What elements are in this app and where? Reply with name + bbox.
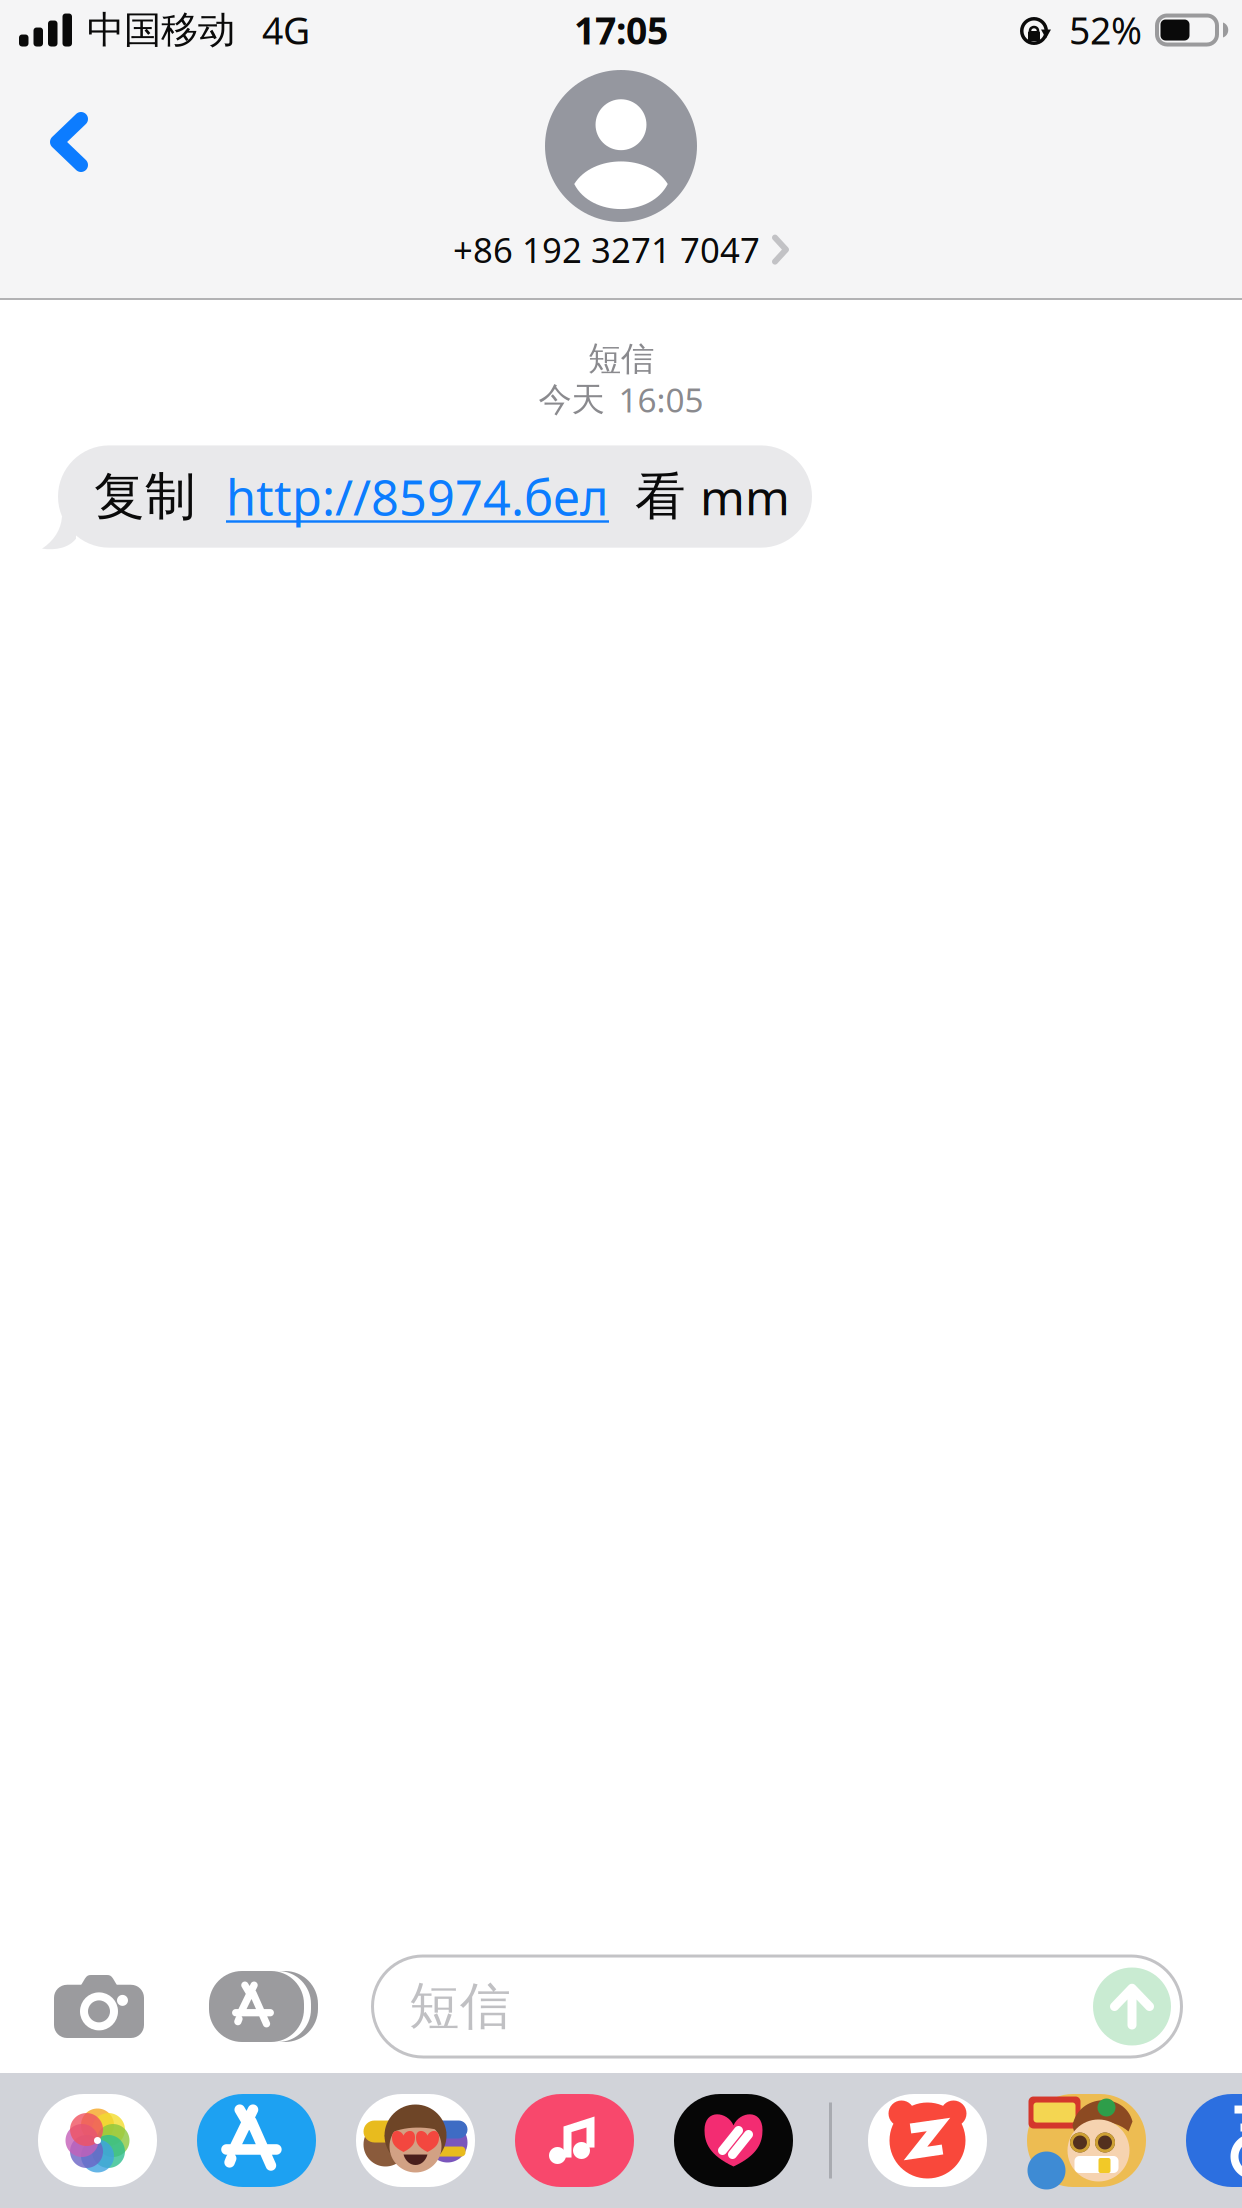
button[interactable]: Back	[0, 86, 118, 198]
staticText: 中国移动	[87, 6, 235, 53]
button[interactable]: App Store	[197, 2094, 316, 2187]
button[interactable]: Game	[1027, 2094, 1146, 2187]
staticText: 52%	[1069, 5, 1142, 55]
button[interactable]: Photos	[38, 2094, 157, 2187]
staticText: 今天	[538, 379, 604, 421]
button[interactable]: 短信	[371, 1954, 1183, 2058]
staticText: mm	[700, 464, 790, 529]
staticText: 短信	[588, 338, 654, 380]
staticText: 17:05	[574, 5, 668, 55]
button[interactable]: Send	[1093, 1967, 1183, 2045]
staticText: 4G	[262, 5, 310, 55]
staticText: 复制	[94, 465, 196, 528]
button[interactable]: App	[1186, 2094, 1242, 2187]
button[interactable]: Digital Touch	[674, 2094, 793, 2187]
staticText: http://85974.бел	[226, 463, 609, 530]
button[interactable]: Camera	[0, 1940, 209, 2073]
staticText: 短信	[409, 1975, 511, 2038]
button[interactable]: Zhihu	[868, 2094, 987, 2187]
button[interactable]: App Store	[209, 1940, 371, 2073]
button[interactable]: +86 192 3271 7047	[445, 222, 797, 277]
button[interactable]: Memoji	[356, 2094, 475, 2187]
staticText: +86 192 3271 7047	[453, 226, 760, 273]
button[interactable]: Music	[515, 2094, 634, 2187]
staticText: 16:05	[618, 377, 703, 422]
staticText: 看	[635, 465, 686, 528]
